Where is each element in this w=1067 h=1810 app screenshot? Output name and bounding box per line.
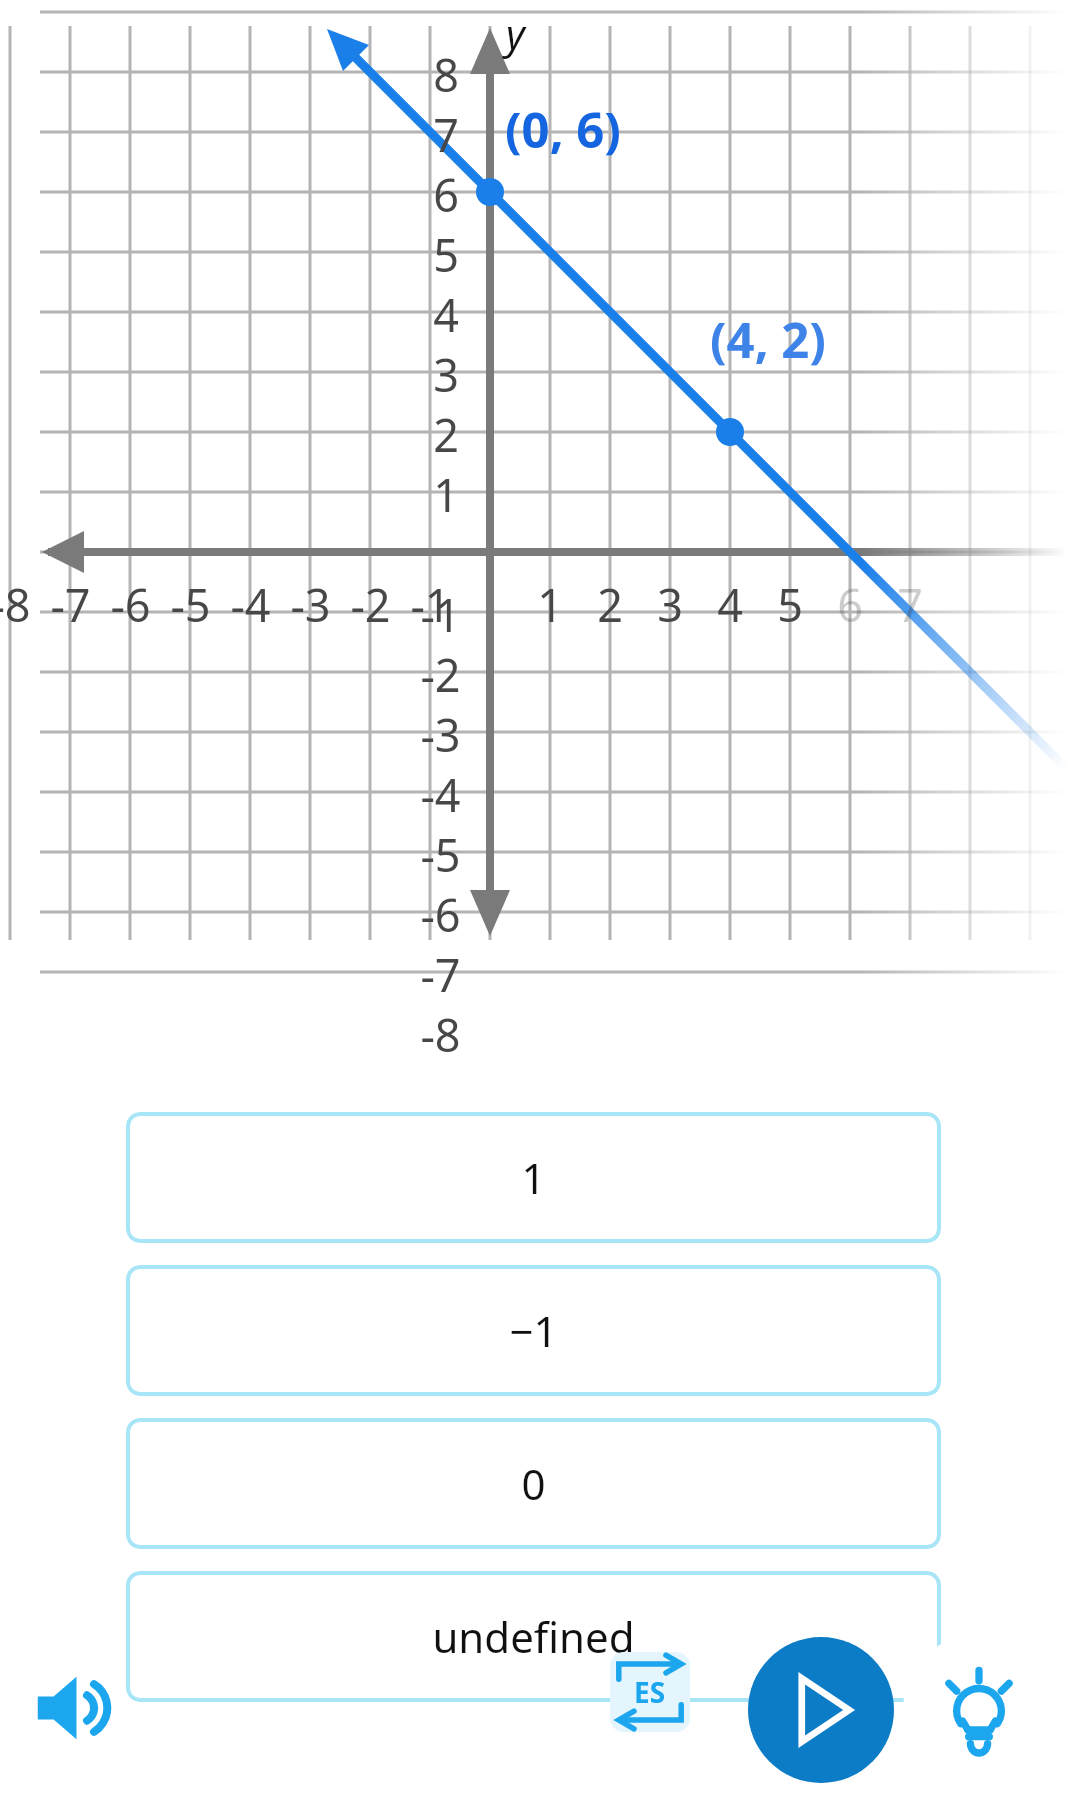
staticText: 5 xyxy=(777,574,803,635)
staticText: (0, 6) xyxy=(505,96,621,163)
staticText: -7 xyxy=(50,574,91,635)
staticText: 3 xyxy=(433,344,459,405)
staticText: -2 xyxy=(350,574,391,635)
button[interactable]: 0 xyxy=(126,1418,941,1549)
staticText: 6 xyxy=(433,164,459,225)
staticText: -5 xyxy=(170,574,211,635)
staticText: 2 xyxy=(597,574,623,635)
staticText: -6 xyxy=(420,884,461,945)
staticText: 3 xyxy=(657,574,683,635)
staticText: undefined xyxy=(432,1608,635,1665)
staticText: -6 xyxy=(110,574,151,635)
staticText: -5 xyxy=(420,824,461,885)
staticText: 4 xyxy=(433,284,459,345)
staticText: -1 xyxy=(420,584,461,645)
staticText: -1 xyxy=(410,574,451,635)
staticText: -2 xyxy=(420,644,461,705)
staticText: (4, 2) xyxy=(710,306,826,373)
staticText: -7 xyxy=(420,944,461,1005)
staticText: -4 xyxy=(230,574,271,635)
staticText: 0 xyxy=(521,1455,546,1512)
staticText: 7 xyxy=(897,574,923,635)
staticText: -3 xyxy=(290,574,331,635)
staticText: 1 xyxy=(433,464,459,525)
staticText: -3 xyxy=(420,704,461,765)
staticText: 1 xyxy=(521,1149,546,1206)
staticText: 8 xyxy=(433,44,459,105)
button[interactable]: −1 xyxy=(126,1265,941,1396)
staticText: 4 xyxy=(717,574,743,635)
staticText: 2 xyxy=(433,404,459,465)
button[interactable]: 1 xyxy=(126,1112,941,1243)
staticText: -4 xyxy=(420,764,461,825)
button[interactable]: undefined xyxy=(126,1571,941,1702)
staticText: 7 xyxy=(433,104,459,165)
staticText: ES xyxy=(634,1673,666,1711)
staticText: 1 xyxy=(537,574,563,635)
button[interactable]: Hint xyxy=(903,1634,1055,1786)
button[interactable]: Play audio xyxy=(36,1674,124,1742)
staticText: -8 xyxy=(420,1004,461,1065)
staticText: -8 xyxy=(0,574,31,635)
button[interactable]: Check answer xyxy=(748,1637,894,1783)
staticText: −1 xyxy=(509,1302,558,1359)
staticText: 6 xyxy=(837,574,863,635)
staticText: 5 xyxy=(433,224,459,285)
button[interactable]: Translate to Spanish xyxy=(610,1652,690,1732)
staticText: y xyxy=(506,6,525,60)
